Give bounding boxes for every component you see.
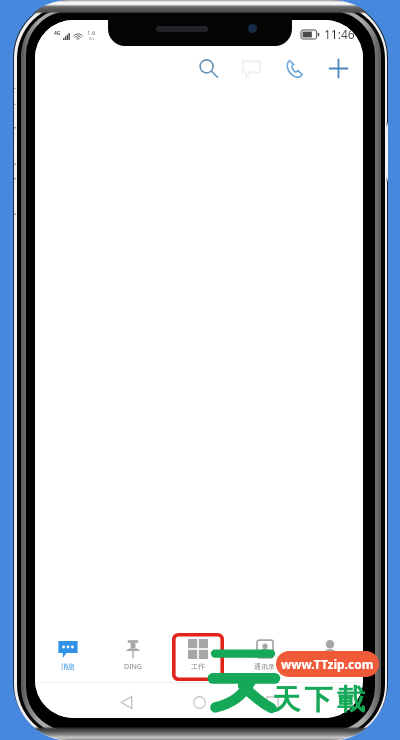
button[interactable]: Messages (234, 51, 268, 85)
button[interactable]: Recents (256, 686, 288, 718)
button[interactable]: 通讯录 (231, 632, 297, 682)
staticText: 1.6 (87, 29, 96, 37)
button[interactable]: Search (191, 51, 225, 85)
button[interactable]: Call (277, 51, 311, 85)
staticText: K/s (89, 36, 95, 41)
staticText: 天下載 (272, 682, 370, 717)
button[interactable]: Home (183, 686, 215, 718)
staticText: www.TTzip.com (281, 656, 374, 672)
staticText: 11:46 (324, 26, 355, 42)
button[interactable]: Add (321, 51, 355, 85)
button[interactable]: Back (110, 686, 142, 718)
button[interactable]: 我 (297, 632, 363, 682)
staticText: DING (124, 662, 142, 672)
staticText: 4G (54, 30, 61, 37)
staticText: 我 (327, 662, 334, 671)
staticText: 通讯录 (254, 662, 275, 671)
staticText: 消息 (61, 662, 75, 671)
staticText: 工作 (191, 662, 205, 671)
button[interactable]: DING (100, 632, 165, 682)
button[interactable]: 消息 (35, 632, 100, 682)
button[interactable]: 工作 (165, 632, 231, 682)
